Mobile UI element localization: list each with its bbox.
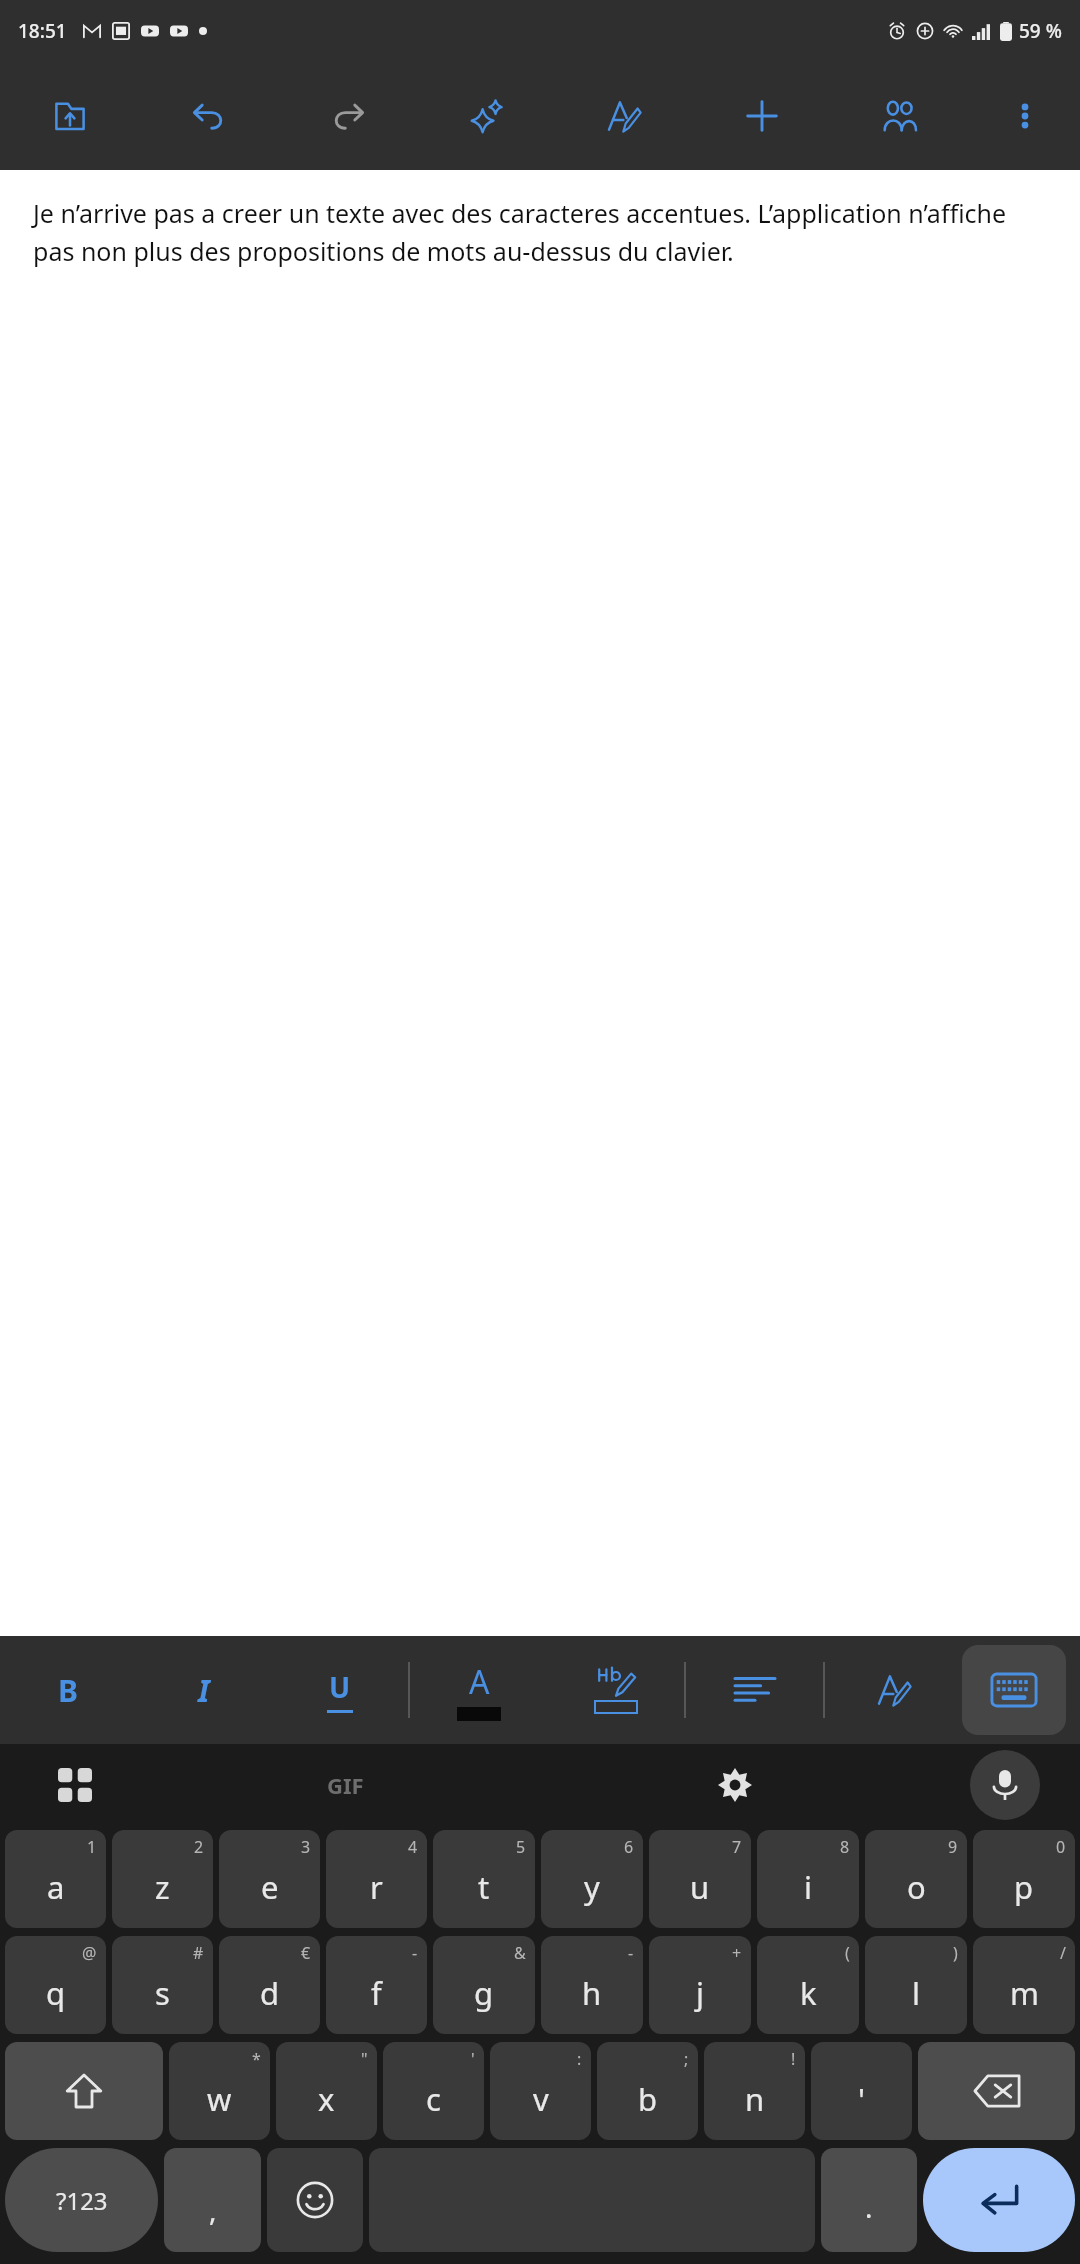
staticText: p bbox=[1014, 1866, 1034, 1908]
staticText: . bbox=[865, 2188, 873, 2226]
button[interactable]: # bbox=[112, 1936, 213, 2034]
button[interactable]: Voice input bbox=[930, 1744, 1080, 1826]
button[interactable]: / bbox=[973, 1936, 1075, 2034]
staticText: s bbox=[155, 1972, 170, 2014]
button[interactable]: Alignment bbox=[686, 1636, 823, 1744]
button[interactable]: - bbox=[541, 1936, 643, 2034]
button[interactable]: ' bbox=[811, 2042, 912, 2140]
button[interactable]: € bbox=[219, 1936, 320, 2034]
button[interactable]: 6 bbox=[541, 1830, 643, 1928]
button[interactable]: Italic bbox=[136, 1636, 272, 1744]
button[interactable]: AI assist bbox=[417, 62, 555, 170]
staticText: k bbox=[800, 1972, 817, 2014]
staticText: 4 bbox=[408, 1836, 418, 1858]
staticText: n bbox=[745, 2078, 765, 2120]
button[interactable]: Highlight colour bbox=[547, 1636, 684, 1744]
button[interactable]: ; bbox=[597, 2042, 698, 2140]
staticText: - bbox=[628, 1942, 634, 1964]
button[interactable]: Keyboard bbox=[962, 1645, 1066, 1735]
button[interactable]: Handwriting bbox=[555, 62, 693, 170]
button[interactable]: Export note bbox=[0, 62, 139, 170]
staticText: ' bbox=[858, 2078, 865, 2120]
button[interactable]: @ bbox=[5, 1936, 106, 2034]
button[interactable]: Toolbox bbox=[0, 1744, 150, 1826]
staticText: 59 % bbox=[1019, 18, 1062, 44]
button[interactable]: Draw bbox=[825, 1636, 962, 1744]
button[interactable]: Enter bbox=[923, 2148, 1075, 2252]
staticText: b bbox=[638, 2078, 658, 2120]
button[interactable]: 4 bbox=[326, 1830, 427, 1928]
staticText: ; bbox=[684, 2048, 689, 2070]
staticText: y bbox=[584, 1866, 600, 1908]
staticText: € bbox=[301, 1942, 311, 1964]
button[interactable]: 5 bbox=[433, 1830, 535, 1928]
button[interactable]: 0 bbox=[973, 1830, 1075, 1928]
staticText: - bbox=[412, 1942, 418, 1964]
button[interactable]: ' bbox=[383, 2042, 484, 2140]
button[interactable]: ( bbox=[757, 1936, 859, 2034]
staticText: u bbox=[690, 1866, 710, 1908]
button[interactable]: Comma bbox=[164, 2148, 261, 2252]
button[interactable]: " bbox=[276, 2042, 377, 2140]
staticText: & bbox=[514, 1942, 526, 1964]
button[interactable]: ! bbox=[704, 2042, 805, 2140]
button[interactable]: Shift bbox=[5, 2042, 163, 2140]
button[interactable]: 8 bbox=[757, 1830, 859, 1928]
staticText: q bbox=[46, 1972, 66, 2014]
button[interactable]: Emoji bbox=[267, 2148, 363, 2252]
staticText: v bbox=[533, 2078, 549, 2120]
staticText: # bbox=[193, 1942, 204, 1964]
button[interactable]: GIF bbox=[150, 1744, 540, 1826]
button[interactable]: Period bbox=[821, 2148, 917, 2252]
staticText: l bbox=[912, 1972, 920, 2014]
staticText: w bbox=[207, 2078, 232, 2120]
button[interactable]: - bbox=[326, 1936, 427, 2034]
button[interactable]: + bbox=[649, 1936, 751, 2034]
staticText: o bbox=[907, 1866, 926, 1908]
staticText: z bbox=[155, 1866, 170, 1908]
staticText: B bbox=[58, 1670, 78, 1711]
staticText: f bbox=[371, 1972, 382, 2014]
staticText: 6 bbox=[624, 1836, 634, 1858]
button[interactable]: 1 bbox=[5, 1830, 106, 1928]
button[interactable]: & bbox=[433, 1936, 535, 2034]
staticText: h bbox=[582, 1972, 602, 2014]
staticText: 3 bbox=[301, 1836, 311, 1858]
button[interactable]: ?123 bbox=[5, 2148, 158, 2252]
button[interactable]: Settings bbox=[540, 1744, 930, 1826]
button[interactable]: Collaborators bbox=[831, 62, 969, 170]
button[interactable]: Undo bbox=[139, 62, 278, 170]
staticText: 5 bbox=[516, 1836, 526, 1858]
button[interactable]: 7 bbox=[649, 1830, 751, 1928]
staticText: ) bbox=[953, 1942, 958, 1964]
staticText: 7 bbox=[732, 1836, 742, 1858]
button[interactable]: Text colour bbox=[410, 1636, 547, 1744]
staticText: i bbox=[804, 1866, 812, 1908]
staticText: ' bbox=[471, 2048, 475, 2070]
button[interactable]: Bold bbox=[0, 1636, 136, 1744]
staticText: g bbox=[474, 1972, 494, 2014]
button[interactable]: Backspace bbox=[918, 2042, 1075, 2140]
button[interactable]: : bbox=[490, 2042, 591, 2140]
button[interactable]: Underline bbox=[272, 1636, 408, 1744]
staticText: ?123 bbox=[56, 2184, 108, 2217]
button[interactable]: Add bbox=[693, 62, 831, 170]
staticText: 2 bbox=[194, 1836, 204, 1858]
staticText: x bbox=[318, 2078, 335, 2120]
button[interactable]: 9 bbox=[865, 1830, 967, 1928]
staticText: 18:51 bbox=[18, 18, 67, 44]
staticText: ! bbox=[791, 2048, 796, 2070]
button[interactable]: 3 bbox=[219, 1830, 320, 1928]
staticText: I bbox=[198, 1670, 210, 1711]
staticText: ( bbox=[845, 1942, 850, 1964]
staticText: / bbox=[1060, 1942, 1066, 1964]
button[interactable]: 2 bbox=[112, 1830, 213, 1928]
button[interactable]: Redo bbox=[278, 62, 417, 170]
staticText: 1 bbox=[87, 1836, 97, 1858]
button[interactable]: More options bbox=[969, 62, 1080, 170]
button[interactable]: * bbox=[169, 2042, 270, 2140]
staticText: 0 bbox=[1056, 1836, 1066, 1858]
staticText: * bbox=[252, 2048, 261, 2070]
button[interactable]: ) bbox=[865, 1936, 967, 2034]
